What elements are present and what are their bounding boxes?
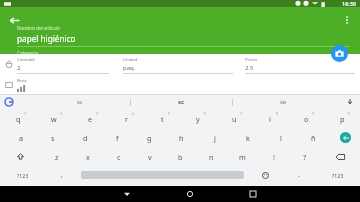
button[interactable]: ,: [46, 166, 78, 184]
staticText: a: [19, 133, 24, 143]
staticText: h: [179, 133, 184, 143]
staticText: v: [148, 152, 152, 162]
staticText: Nombre del artículo: [17, 25, 61, 31]
button[interactable]: k: [231, 128, 264, 147]
button[interactable]: q: [0, 109, 36, 128]
button[interactable]: ?123: [0, 166, 46, 184]
button[interactable]: a: [5, 128, 37, 147]
button[interactable]: se: [233, 95, 334, 109]
button[interactable]: n: [196, 147, 227, 166]
staticText: sc: [178, 98, 185, 106]
button[interactable]: z: [41, 147, 72, 166]
staticText: x: [86, 152, 90, 162]
staticText: !: [273, 152, 275, 162]
button[interactable]: m: [227, 147, 258, 166]
button[interactable]: y: [180, 109, 216, 128]
button[interactable]: l: [264, 128, 297, 147]
button[interactable]: ñ: [297, 128, 330, 147]
staticText: papel higiénico: [17, 33, 76, 44]
button[interactable]: b: [165, 147, 196, 166]
staticText: ñ: [311, 133, 316, 143]
button[interactable]: h: [165, 128, 198, 147]
staticText: n: [209, 152, 214, 162]
button[interactable]: More options: [338, 11, 356, 29]
staticText: 2: [17, 64, 21, 72]
staticText: Unidad: [123, 57, 138, 63]
button[interactable]: Shift: [0, 147, 41, 166]
staticText: g: [147, 133, 152, 143]
staticText: t: [161, 114, 164, 124]
staticText: ?123: [332, 172, 344, 179]
staticText: 2: [60, 111, 63, 116]
button[interactable]: Recents: [246, 187, 260, 201]
button[interactable]: r: [108, 109, 144, 128]
button[interactable]: Hide keyboard: [120, 187, 134, 201]
button[interactable]: c: [103, 147, 134, 166]
staticText: m: [239, 152, 246, 162]
button[interactable]: sc: [131, 95, 232, 109]
staticText: Cantidad: [17, 57, 35, 63]
button[interactable]: p: [324, 109, 360, 128]
button[interactable]: d: [69, 128, 101, 147]
staticText: 8: [276, 111, 279, 116]
staticText: c: [117, 152, 121, 162]
button[interactable]: t: [144, 109, 180, 128]
staticText: q: [16, 114, 21, 124]
staticText: b: [178, 152, 183, 162]
button[interactable]: s: [37, 128, 69, 147]
button[interactable]: sc: [30, 95, 130, 109]
staticText: u: [232, 114, 237, 124]
staticText: i: [269, 114, 271, 124]
staticText: 9: [312, 111, 315, 116]
button[interactable]: Take photo: [331, 45, 348, 62]
staticText: j: [214, 133, 216, 143]
staticText: ?: [303, 152, 307, 162]
staticText: o: [304, 114, 309, 124]
staticText: .: [298, 170, 300, 180]
button[interactable]: Home: [183, 187, 197, 201]
staticText: s: [51, 133, 55, 143]
staticText: Precio: [245, 57, 258, 63]
button[interactable]: Back: [5, 11, 23, 29]
button[interactable]: o: [288, 109, 324, 128]
button[interactable]: u: [216, 109, 252, 128]
button[interactable]: j: [198, 128, 231, 147]
staticText: f: [116, 133, 119, 143]
staticText: w: [51, 114, 57, 124]
staticText: p: [340, 114, 345, 124]
staticText: k: [246, 133, 250, 143]
button[interactable]: Expand suggestions: [345, 97, 355, 107]
button[interactable]: i: [252, 109, 288, 128]
staticText: Categoría: [17, 50, 38, 54]
button[interactable]: v: [134, 147, 165, 166]
button[interactable]: x: [72, 147, 103, 166]
button[interactable]: g: [133, 128, 165, 147]
button[interactable]: f: [101, 128, 133, 147]
staticText: r: [125, 114, 128, 124]
button[interactable]: e: [72, 109, 108, 128]
button[interactable]: ?: [289, 147, 320, 166]
staticText: ?123: [17, 172, 29, 179]
staticText: 1: [24, 111, 27, 116]
button[interactable]: ?123: [315, 166, 360, 184]
staticText: 4: [132, 111, 135, 116]
staticText: y: [196, 114, 200, 124]
button[interactable]: Enter: [330, 128, 360, 147]
staticText: sc: [77, 98, 83, 106]
staticText: z: [55, 152, 59, 162]
button[interactable]: w: [36, 109, 72, 128]
staticText: 7: [240, 111, 243, 116]
staticText: 5: [168, 111, 171, 116]
button[interactable]: Backspace: [320, 147, 360, 166]
staticText: 3: [96, 111, 99, 116]
staticText: ,: [61, 170, 63, 180]
staticText: l: [280, 133, 282, 143]
staticText: e: [88, 114, 93, 124]
staticText: d: [83, 133, 88, 143]
staticText: Nota: [17, 78, 27, 84]
staticText: 16:36: [342, 0, 357, 7]
button[interactable]: Emoji: [247, 166, 283, 184]
button[interactable]: !: [258, 147, 289, 166]
